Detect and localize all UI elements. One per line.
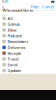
button[interactable]: Social — [0, 62, 56, 68]
staticText: Social — [7, 62, 17, 67]
button[interactable]: Updates — [0, 68, 56, 73]
staticText: Deliveries — [7, 45, 25, 50]
button[interactable]: Deliveries — [0, 44, 56, 50]
staticText: Podcasts — [7, 33, 22, 38]
staticText: Cancel — [42, 4, 54, 9]
staticText: Who would like to join — [2, 8, 32, 18]
button[interactable]: Newsletters — [0, 39, 56, 44]
button[interactable]: Inbox — [0, 27, 56, 33]
button[interactable]: Receipts — [0, 50, 56, 56]
staticText: Newsletters — [7, 39, 28, 44]
button[interactable]: Back — [0, 2, 6, 11]
button[interactable]: All — [0, 15, 56, 21]
staticText: Updates — [7, 68, 21, 73]
staticText: Filter — [30, 4, 39, 9]
staticText: ▮▮▮ — [51, 0, 54, 3]
staticText: Inbox — [7, 27, 16, 33]
button[interactable]: Filter — [30, 4, 39, 9]
staticText: 9:41 — [2, 0, 9, 3]
staticText: ‹ — [2, 2, 4, 11]
button[interactable]: Cancel — [39, 4, 56, 9]
button[interactable]: Travel — [0, 56, 56, 62]
staticText: Receipts — [7, 50, 21, 56]
staticText: All — [7, 16, 12, 21]
staticText: GitHub — [7, 21, 19, 27]
button[interactable]: Podcasts — [0, 33, 56, 39]
button[interactable]: GitHub — [0, 21, 56, 27]
staticText: Travel — [7, 56, 18, 62]
